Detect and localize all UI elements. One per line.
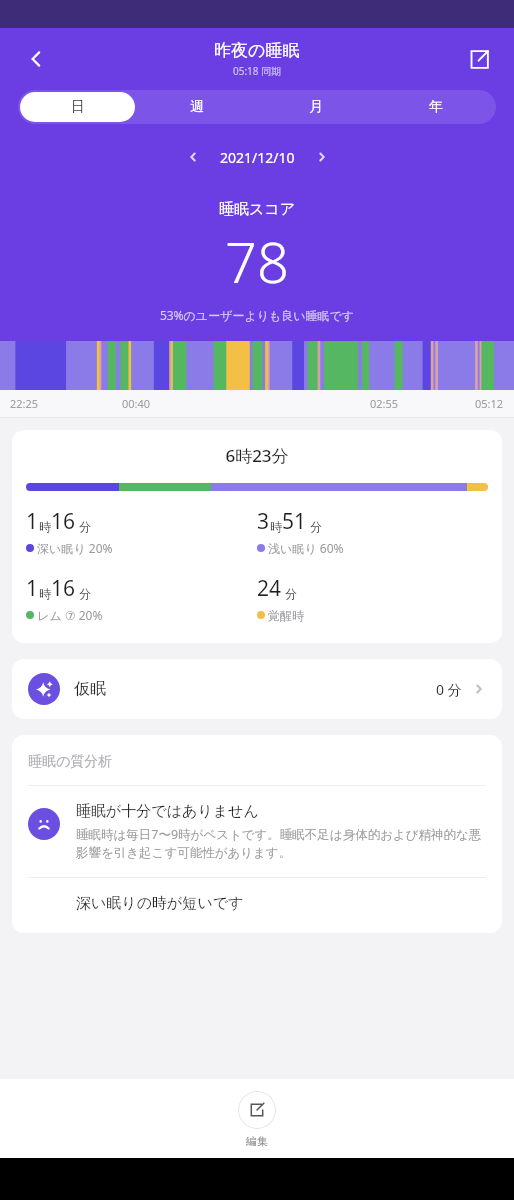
staticText: 昨夜の睡眠	[214, 40, 300, 61]
button[interactable]: 仮眠	[12, 659, 502, 719]
button[interactable]: 週	[139, 92, 254, 122]
staticText: 16	[51, 507, 76, 536]
staticText: 02:55	[370, 396, 399, 411]
staticText: 時	[39, 586, 51, 601]
staticText: 深い眠りの時が短いです	[76, 894, 244, 913]
staticText: 6時23分	[26, 444, 488, 467]
staticText: 2021/12/10	[220, 148, 295, 167]
staticText: 睡眠スコア	[0, 200, 514, 219]
staticText: 24	[257, 574, 282, 603]
staticText: 編集	[246, 1134, 268, 1148]
button[interactable]: Back	[14, 37, 58, 81]
button[interactable]: Share	[458, 38, 500, 80]
staticText: 分	[79, 586, 91, 601]
staticText: 浅い眠り 60%	[265, 540, 344, 556]
button[interactable]: 月	[258, 92, 374, 122]
button[interactable]: 編集	[0, 1079, 514, 1158]
staticText: 月	[309, 98, 323, 116]
staticText: 51	[282, 507, 307, 536]
staticText: 週	[190, 98, 204, 116]
staticText: 53%のユーザーよりも良い睡眠です	[0, 307, 514, 323]
staticText: 16	[51, 574, 76, 603]
button[interactable]: Previous day	[176, 142, 210, 172]
staticText: 05:18 同期	[233, 64, 282, 78]
staticText: 時	[270, 519, 282, 534]
staticText: 1	[26, 507, 39, 536]
staticText: 1	[26, 574, 39, 603]
staticText: 05:12	[475, 396, 504, 411]
staticText: 0 分	[436, 680, 462, 699]
staticText: 時	[39, 519, 51, 534]
staticText: 分	[285, 586, 297, 601]
staticText: 3	[257, 507, 270, 536]
staticText: 睡眠の質分析	[28, 753, 113, 771]
staticText: 分	[310, 519, 322, 534]
staticText: レム ⑦ 20%	[34, 607, 103, 623]
staticText: 78	[0, 223, 514, 299]
button[interactable]: 年	[378, 92, 494, 122]
staticText: 覚醒時	[265, 607, 305, 623]
staticText: 深い眠り 20%	[34, 540, 113, 556]
staticText: 睡眠が十分ではありません	[76, 802, 259, 821]
button[interactable]: Next day	[305, 142, 339, 172]
button[interactable]: 日	[20, 92, 135, 122]
button[interactable]: 6時23分	[12, 430, 502, 643]
staticText: 年	[429, 98, 443, 116]
button[interactable]: 睡眠の質分析	[12, 735, 502, 933]
staticText: 仮眠	[74, 679, 106, 699]
staticText: 22:25	[10, 396, 39, 411]
staticText: 分	[79, 519, 91, 534]
staticText: 睡眠時は毎日7〜9時がベストです。睡眠不足は身体的および精神的な悪影響を引き起こ…	[76, 826, 486, 861]
staticText: 日	[71, 98, 85, 116]
staticText: 00:40	[122, 396, 151, 411]
